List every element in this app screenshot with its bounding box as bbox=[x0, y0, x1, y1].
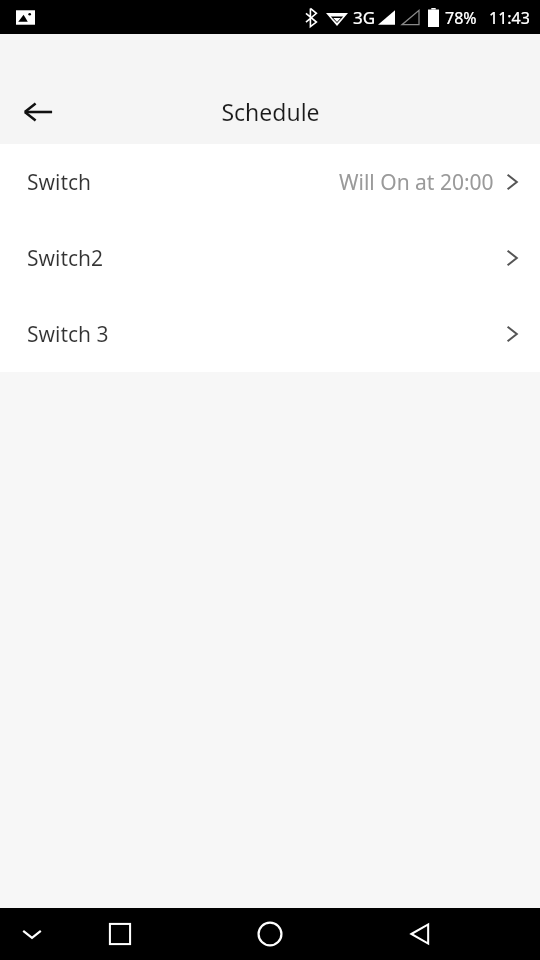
button[interactable]: Back bbox=[396, 910, 444, 958]
button[interactable]: Switch 3 bbox=[0, 296, 540, 372]
staticText: 11:43 bbox=[489, 7, 530, 29]
staticText: Switch 3 bbox=[27, 320, 109, 349]
staticText: Switch2 bbox=[27, 244, 104, 273]
staticText: Schedule bbox=[221, 96, 320, 127]
button[interactable]: Switch2 bbox=[0, 220, 540, 296]
staticText: 78% bbox=[445, 7, 477, 29]
staticText: 3G bbox=[353, 6, 376, 29]
button[interactable]: Hide keyboard bbox=[8, 910, 56, 958]
button[interactable]: Back bbox=[14, 88, 62, 136]
button[interactable]: Switch bbox=[0, 144, 540, 220]
staticText: Switch bbox=[27, 168, 92, 197]
button[interactable]: Recent apps bbox=[96, 910, 144, 958]
button[interactable]: Home bbox=[246, 910, 294, 958]
staticText: Will On at 20:00 bbox=[339, 168, 494, 197]
